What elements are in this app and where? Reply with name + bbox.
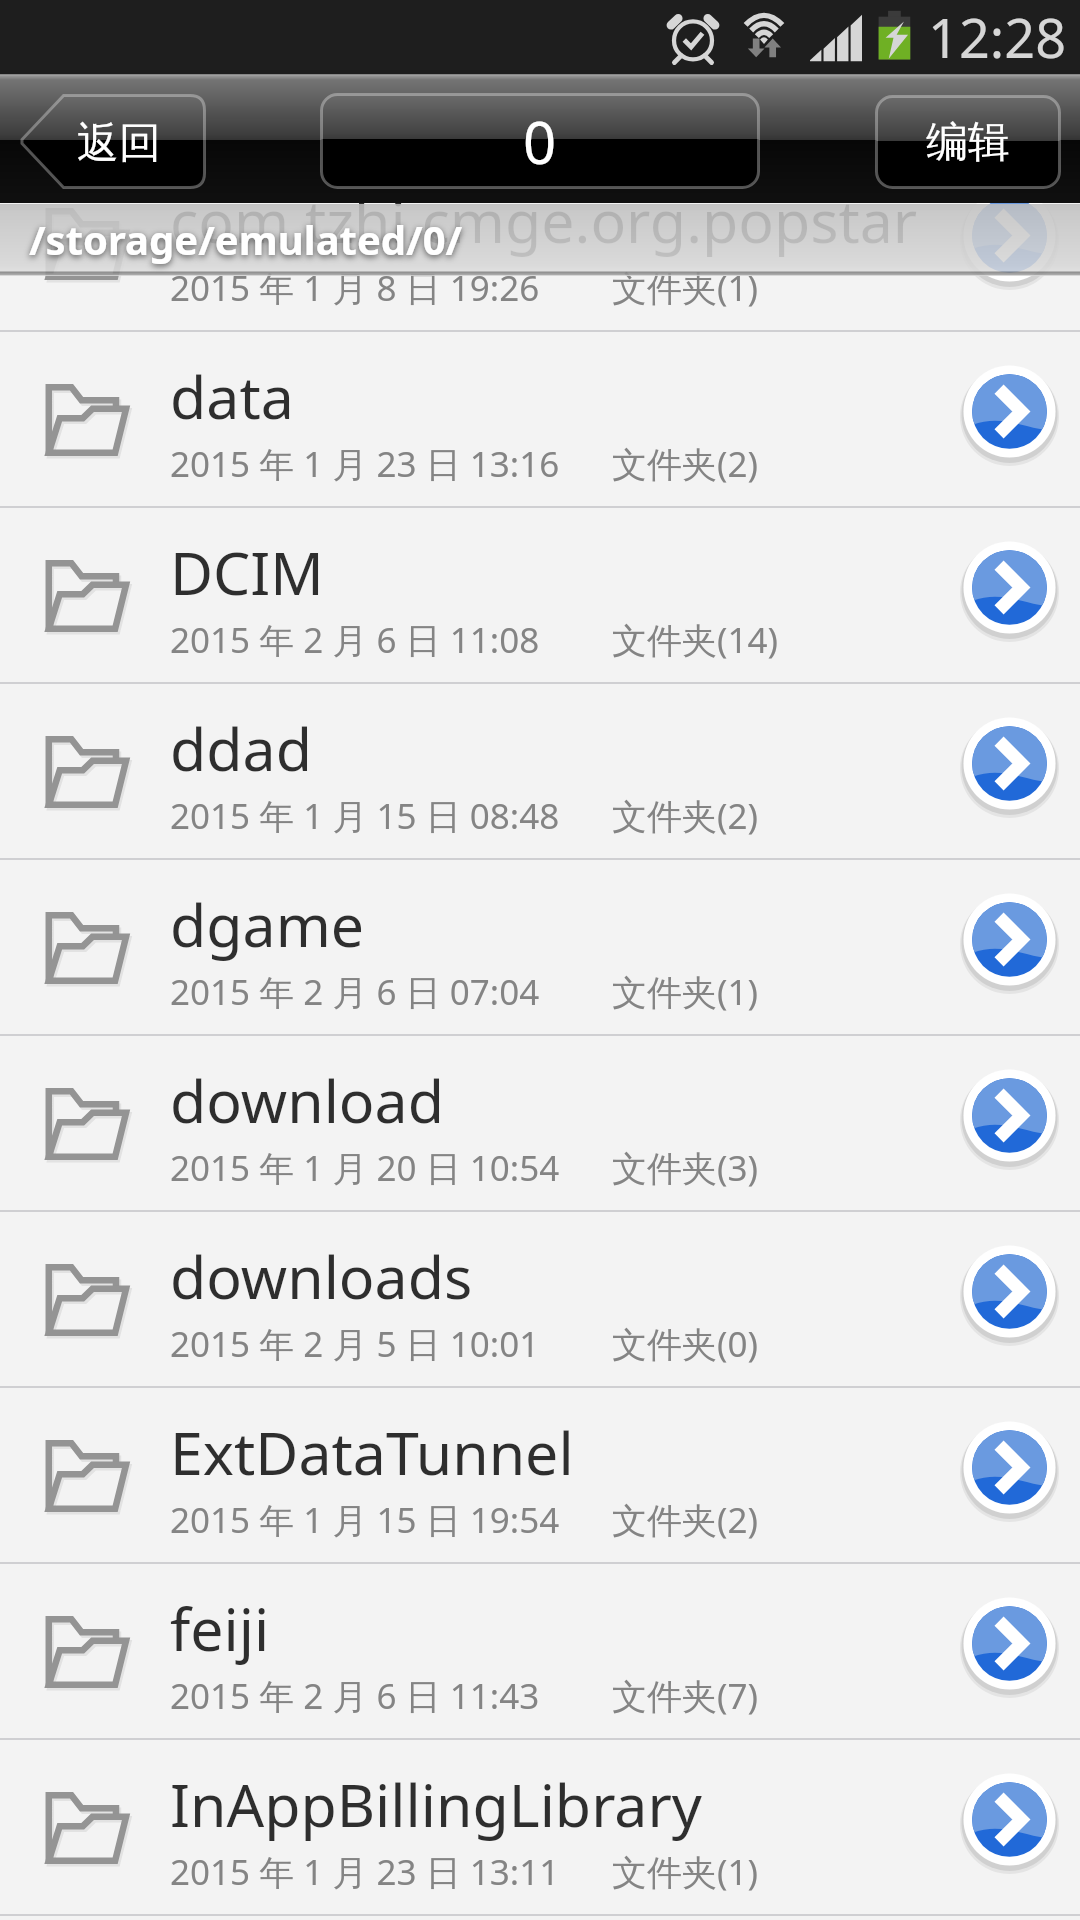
- staticText: 2015 年 2 月 6 日 11:08: [170, 616, 540, 664]
- button[interactable]: 编辑: [875, 95, 1061, 189]
- staticText: com.tzhi.cmge.org.popstar: [170, 180, 918, 260]
- button[interactable]: DCIM: [0, 508, 1080, 684]
- button[interactable]: Open folder: [952, 530, 1067, 645]
- staticText: 文件夹(1): [612, 1848, 759, 1896]
- button[interactable]: feiji: [0, 1564, 1080, 1740]
- button[interactable]: downloads: [0, 1212, 1080, 1388]
- staticText: 编辑: [926, 116, 1010, 169]
- button[interactable]: data: [0, 332, 1080, 508]
- staticText: data: [170, 356, 294, 436]
- button[interactable]: dgame: [0, 860, 1080, 1036]
- staticText: ExtDataTunnel: [170, 1412, 574, 1492]
- button[interactable]: 返回: [20, 94, 206, 189]
- staticText: 2015 年 2 月 6 日 07:04: [170, 968, 540, 1016]
- staticText: /storage/emulated/0/: [29, 212, 463, 266]
- button[interactable]: download: [0, 1036, 1080, 1212]
- button[interactable]: Open folder: [952, 1586, 1067, 1701]
- staticText: 2015 年 1 月 15 日 08:48: [170, 792, 560, 840]
- staticText: 2015 年 1 月 23 日 13:16: [170, 440, 560, 488]
- button[interactable]: InAppBillingLibrary: [0, 1740, 1080, 1916]
- staticText: 返回: [77, 117, 161, 170]
- button[interactable]: Open folder: [952, 1234, 1067, 1349]
- staticText: 文件夹(2): [612, 440, 759, 488]
- staticText: ddad: [170, 708, 312, 788]
- staticText: DCIM: [170, 532, 324, 612]
- button[interactable]: Open folder: [952, 354, 1067, 469]
- staticText: download: [170, 1060, 444, 1140]
- staticText: 2015 年 2 月 6 日 11:43: [170, 1672, 540, 1720]
- staticText: 2015 年 1 月 15 日 19:54: [170, 1496, 560, 1544]
- button[interactable]: Open folder: [952, 1410, 1067, 1525]
- staticText: 2015 年 1 月 23 日 13:11: [170, 1848, 560, 1896]
- button[interactable]: Open folder: [952, 1058, 1067, 1173]
- staticText: 文件夹(14): [612, 616, 779, 664]
- staticText: 0: [523, 102, 557, 181]
- button[interactable]: /storage/emulated/0/: [0, 204, 1080, 276]
- button[interactable]: Open folder: [952, 882, 1067, 997]
- button[interactable]: 0: [320, 93, 760, 189]
- staticText: 文件夹(1): [612, 968, 759, 1016]
- button[interactable]: Open folder: [952, 1762, 1067, 1877]
- staticText: downloads: [170, 1236, 473, 1316]
- staticText: 文件夹(3): [612, 1144, 759, 1192]
- staticText: 2015 年 2 月 5 日 10:01: [170, 1320, 540, 1368]
- staticText: feiji: [170, 1588, 270, 1668]
- staticText: dgame: [170, 884, 365, 964]
- staticText: InAppBillingLibrary: [170, 1764, 702, 1844]
- staticText: 文件夹(2): [612, 792, 759, 840]
- staticText: 文件夹(7): [612, 1672, 759, 1720]
- staticText: 2015 年 1 月 20 日 10:54: [170, 1144, 560, 1192]
- staticText: 文件夹(0): [612, 1320, 759, 1368]
- button[interactable]: ddad: [0, 684, 1080, 860]
- button[interactable]: com.tzhi.cmge.org.popstar: [0, 156, 1080, 332]
- button[interactable]: ExtDataTunnel: [0, 1388, 1080, 1564]
- button[interactable]: Open folder: [952, 178, 1067, 293]
- staticText: 文件夹(1): [612, 264, 759, 312]
- staticText: 文件夹(2): [612, 1496, 759, 1544]
- staticText: 2015 年 1 月 8 日 19:26: [170, 264, 540, 312]
- button[interactable]: Open folder: [952, 706, 1067, 821]
- staticText: 12:28: [928, 0, 1067, 74]
